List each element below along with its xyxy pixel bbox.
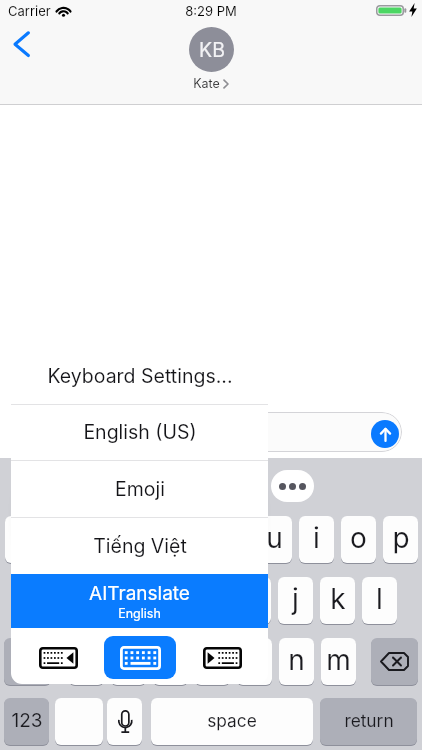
staticText: 123 (11, 709, 43, 732)
button[interactable]: AITranslate (11, 574, 268, 628)
button[interactable]: Next keyboard (203, 647, 242, 669)
button[interactable]: p (383, 516, 418, 563)
button[interactable] (44, 412, 402, 452)
button[interactable] (271, 470, 314, 502)
staticText: KB (199, 38, 225, 62)
button[interactable]: e (89, 516, 124, 563)
button[interactable]: Keyboard (104, 636, 176, 679)
button[interactable]: c (153, 638, 188, 685)
button[interactable]: s (68, 577, 103, 624)
button[interactable]: l (362, 577, 397, 624)
staticText: j (292, 582, 299, 616)
staticText: 8:29 PM (0, 3, 422, 19)
staticText: e (98, 521, 115, 555)
button[interactable]: return (320, 698, 417, 745)
button[interactable]: z (69, 638, 104, 685)
button[interactable]: space (151, 698, 313, 745)
staticText: s (78, 582, 93, 616)
staticText: v (205, 643, 221, 677)
button[interactable]: u (257, 516, 292, 563)
button[interactable]: f (152, 577, 187, 624)
button[interactable]: q (5, 516, 40, 563)
button[interactable]: v (195, 638, 230, 685)
button[interactable]: m (321, 638, 356, 685)
staticText: m (326, 643, 351, 677)
button[interactable]: o (341, 516, 376, 563)
staticText: c (163, 643, 179, 677)
button[interactable]: Previous keyboard (39, 647, 78, 669)
staticText: n (288, 643, 305, 677)
button[interactable]: 123 (4, 698, 49, 745)
button[interactable]: KB (0, 27, 422, 91)
staticText: u (266, 521, 283, 555)
button[interactable]: Back (0, 22, 44, 70)
button[interactable]: y (215, 516, 250, 563)
button[interactable]: n (279, 638, 314, 685)
button[interactable]: w (47, 516, 82, 563)
button[interactable]: d (110, 577, 145, 624)
staticText: k (330, 582, 346, 616)
staticText: x (121, 643, 137, 677)
button[interactable]: b (237, 638, 272, 685)
button[interactable]: i (299, 516, 334, 563)
staticText: Keyboard Settings... (47, 364, 233, 388)
staticText: English (US) (83, 420, 197, 444)
button[interactable]: Dictate (107, 698, 142, 745)
button[interactable]: Tiếng Việt (11, 517, 268, 574)
button[interactable]: Backspace (371, 638, 418, 685)
staticText: f (164, 582, 175, 616)
staticText: AITranslate (89, 582, 190, 605)
button[interactable]: Shift (4, 638, 51, 685)
staticText: Tiếng Việt (93, 534, 187, 558)
button[interactable]: x (111, 638, 146, 685)
staticText: r (143, 521, 154, 555)
staticText: o (350, 521, 367, 555)
staticText: i (313, 521, 320, 555)
staticText: space (207, 710, 257, 731)
staticText: Carrier (8, 3, 51, 19)
staticText: l (376, 582, 383, 616)
button[interactable]: Switch keyboard (55, 698, 103, 745)
button[interactable]: r (131, 516, 166, 563)
staticText: English (118, 606, 161, 621)
staticText: d (119, 582, 137, 616)
button[interactable]: t (173, 516, 208, 563)
button[interactable]: Emoji (11, 460, 268, 517)
button[interactable]: Keyboard Settings... (11, 348, 268, 404)
staticText: t (186, 521, 196, 555)
button[interactable]: j (278, 577, 313, 624)
staticText: Kate (193, 76, 220, 91)
button[interactable]: h (236, 577, 271, 624)
button[interactable]: Send (371, 420, 399, 448)
button[interactable]: English (US) (11, 404, 268, 460)
staticText: p (392, 521, 410, 555)
button[interactable]: k (320, 577, 355, 624)
staticText: Emoji (115, 477, 165, 501)
staticText: return (344, 710, 394, 731)
